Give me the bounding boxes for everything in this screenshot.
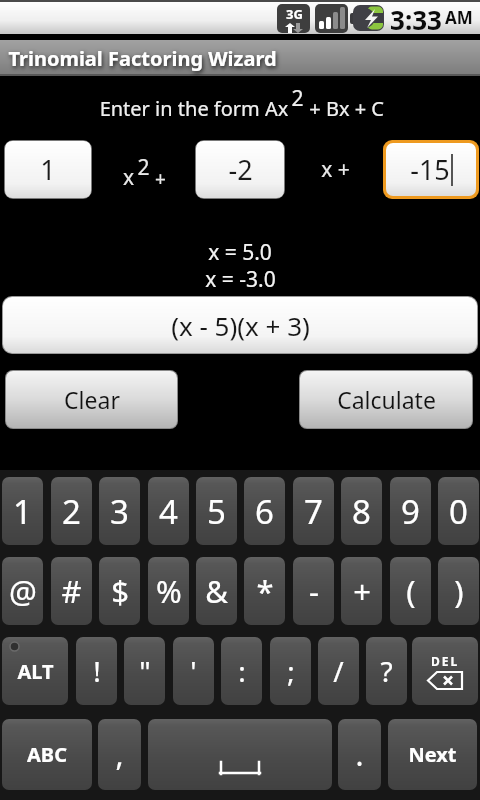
staticText: " — [139, 652, 151, 690]
staticText: 6 — [255, 489, 274, 534]
staticText: AM — [445, 6, 473, 29]
button[interactable]: " — [124, 637, 165, 705]
staticText: 9 — [401, 489, 420, 534]
staticText: % — [156, 570, 182, 612]
button[interactable]: Clear — [6, 371, 177, 428]
button[interactable]: @ — [2, 557, 43, 625]
staticText: 4 — [159, 489, 178, 534]
button[interactable]: Calculate — [300, 371, 472, 428]
staticText: 5 — [207, 489, 226, 534]
staticText: x + — [321, 155, 350, 184]
staticText: # — [61, 570, 82, 612]
staticText: Enter in the form Ax — [97, 95, 291, 122]
button[interactable]: -15 — [386, 143, 476, 196]
button[interactable]: 4 — [148, 477, 189, 545]
staticText: x = 5.0 — [208, 238, 272, 265]
button[interactable]: / — [318, 637, 359, 705]
button[interactable]: 8 — [341, 477, 382, 545]
staticText: 3:33 — [390, 2, 442, 33]
button[interactable]: 1 — [2, 477, 43, 545]
button[interactable]: 5 — [196, 477, 237, 545]
button[interactable]: , — [98, 719, 141, 790]
button[interactable]: 6 — [244, 477, 285, 545]
staticText: . — [355, 734, 364, 775]
staticText: + — [150, 166, 166, 192]
button[interactable]: 3 — [99, 477, 140, 545]
button[interactable]: (x - 5)(x + 3) — [3, 297, 477, 353]
button[interactable]: ( — [390, 557, 431, 625]
staticText: 1 — [13, 489, 32, 534]
button[interactable]: $ — [99, 557, 140, 625]
staticText: @ — [9, 570, 37, 612]
button[interactable]: ; — [270, 637, 311, 705]
staticText: : — [238, 652, 246, 690]
button[interactable]: 1 — [5, 141, 91, 198]
staticText: Next — [408, 741, 457, 768]
staticText: 3 — [110, 489, 129, 534]
button[interactable]: 9 — [390, 477, 431, 545]
button[interactable]: 0 — [438, 477, 479, 545]
staticText: ' — [190, 652, 197, 690]
staticText: - — [309, 570, 319, 612]
staticText: x = -3.0 — [205, 265, 276, 292]
button[interactable]: ABC — [2, 719, 92, 790]
button[interactable]: ALT — [2, 637, 68, 705]
staticText: $ — [111, 570, 129, 612]
button[interactable]: DEL — [412, 637, 478, 705]
button[interactable]: ) — [438, 557, 479, 625]
staticText: ABC — [27, 741, 67, 768]
button[interactable]: : — [221, 637, 262, 705]
button[interactable]: + — [341, 557, 382, 625]
staticText: / — [333, 652, 344, 690]
staticText: Calculate — [337, 384, 436, 415]
staticText: 1 — [40, 151, 56, 188]
staticText: x — [120, 163, 137, 192]
button[interactable]: ? — [366, 637, 407, 705]
staticText: Clear — [64, 384, 120, 415]
button[interactable]: - — [293, 557, 334, 625]
staticText: 0 — [449, 489, 468, 534]
staticText: -2 — [228, 151, 253, 188]
staticText: + Bx + C — [304, 95, 384, 122]
staticText: 2 — [137, 153, 150, 182]
button[interactable]: 2 — [51, 477, 92, 545]
staticText: * — [256, 570, 274, 612]
staticText: -15 — [410, 151, 450, 188]
staticText: + — [353, 570, 371, 612]
button[interactable]: % — [148, 557, 189, 625]
button[interactable]: . — [338, 719, 381, 790]
staticText: ) — [454, 570, 464, 612]
button[interactable]: -2 — [196, 141, 284, 198]
button[interactable] — [148, 719, 332, 790]
button[interactable]: & — [196, 557, 237, 625]
staticText: 7 — [304, 489, 323, 534]
staticText: 2 — [62, 489, 81, 534]
staticText: ? — [380, 652, 393, 690]
button[interactable]: ' — [173, 637, 214, 705]
staticText: Trinomial Factoring Wizard — [8, 45, 277, 72]
staticText: (x - 5)(x + 3) — [171, 308, 310, 343]
staticText: ( — [406, 570, 416, 612]
staticText: ! — [93, 652, 101, 690]
staticText: 2 — [291, 84, 304, 113]
staticText: DEL — [431, 653, 460, 669]
staticText: , — [115, 734, 124, 775]
button[interactable]: * — [244, 557, 285, 625]
staticText: ALT — [17, 658, 54, 685]
button[interactable]: Next — [388, 719, 477, 790]
button[interactable]: 7 — [293, 477, 334, 545]
button[interactable]: # — [51, 557, 92, 625]
staticText: 8 — [352, 489, 371, 534]
staticText: ; — [287, 652, 295, 690]
staticText: & — [205, 570, 228, 612]
staticText: 3G — [286, 5, 303, 23]
button[interactable]: ! — [76, 637, 117, 705]
